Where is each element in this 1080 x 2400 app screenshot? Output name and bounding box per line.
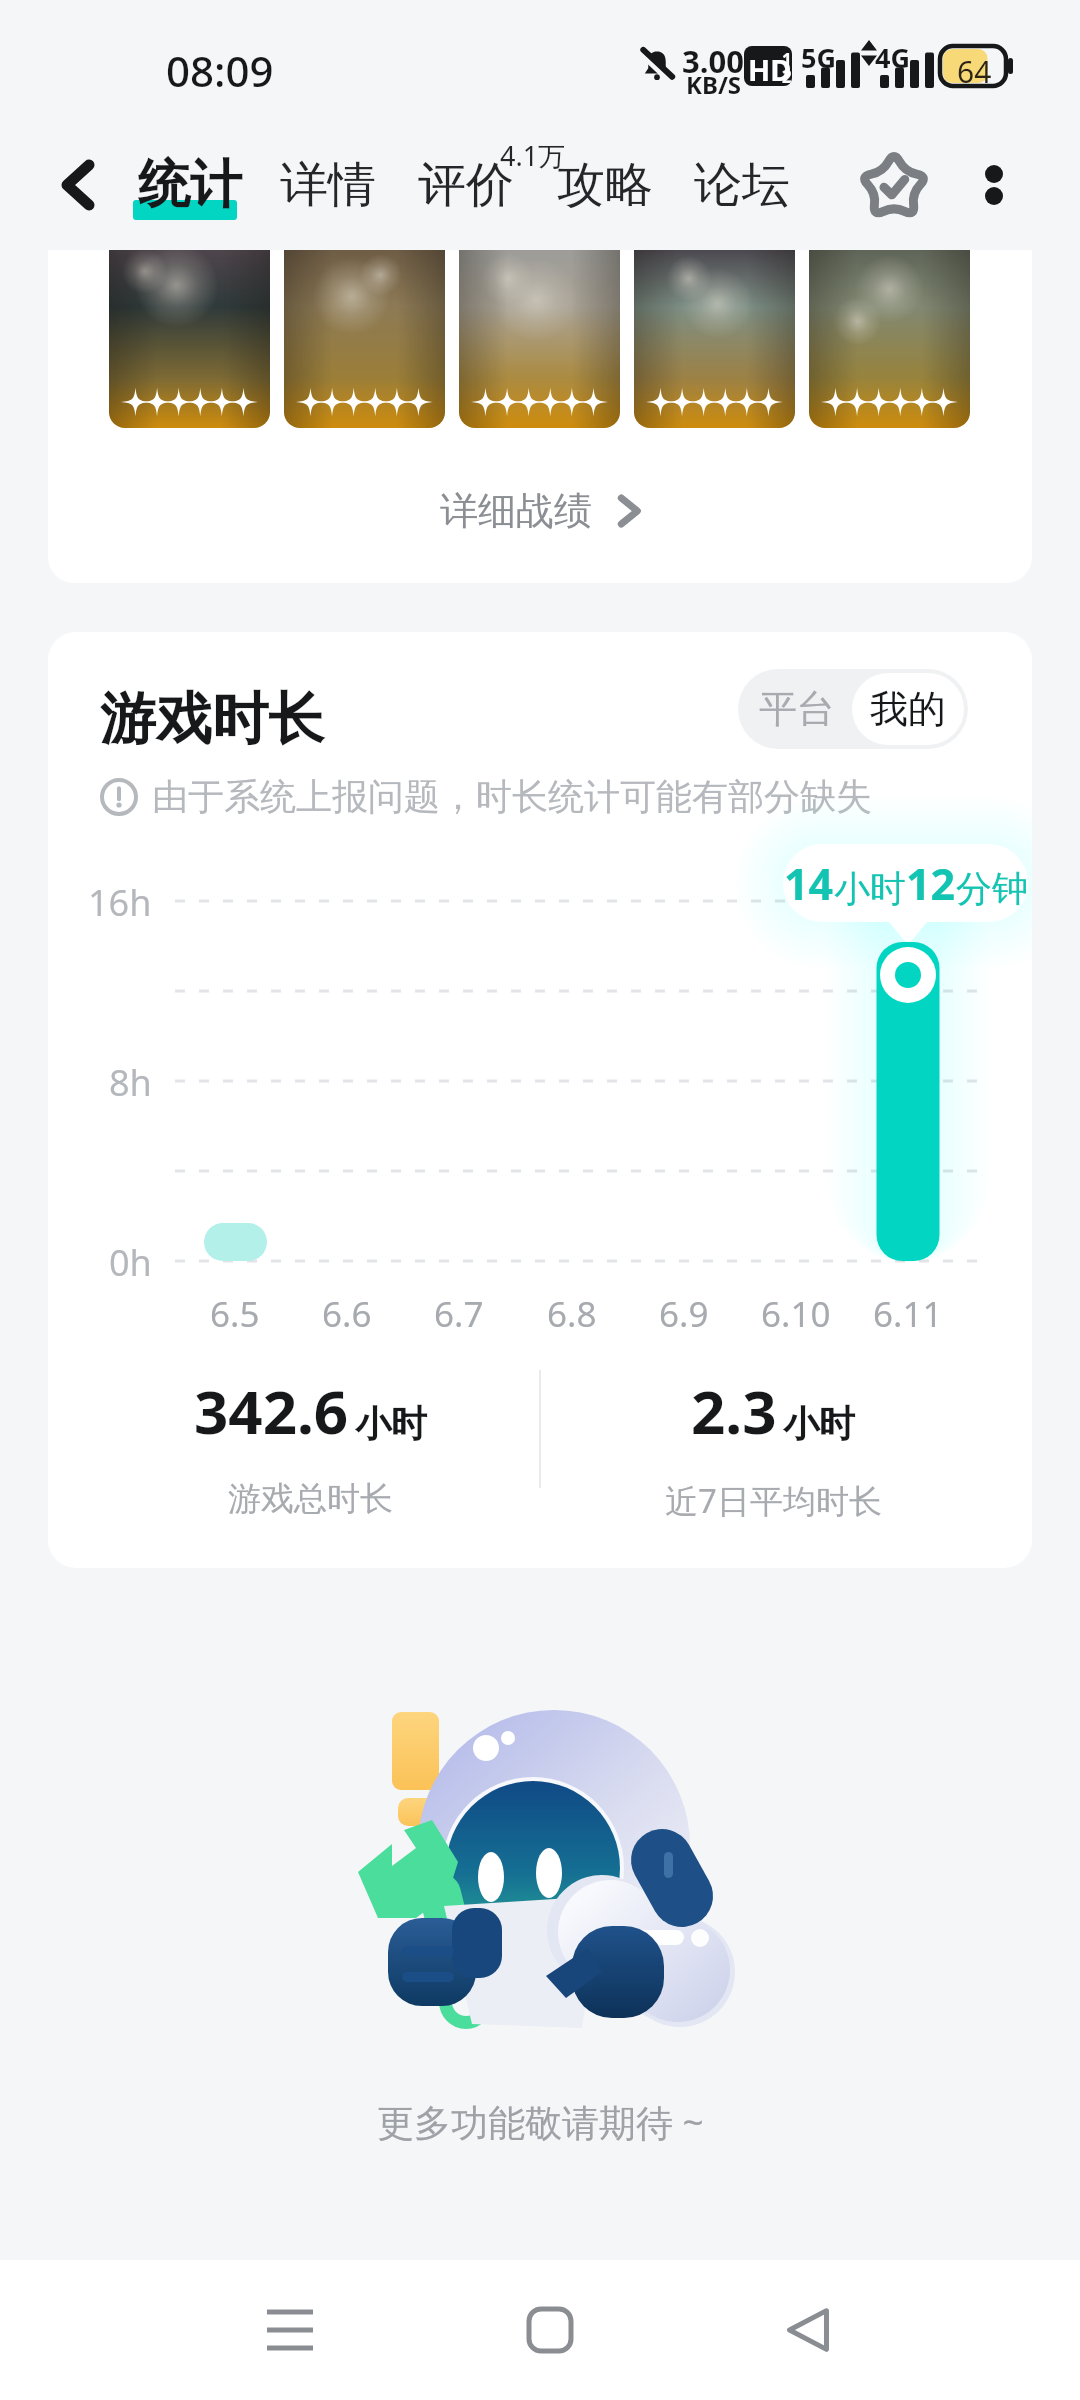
- button[interactable]: 统计: [120, 120, 260, 250]
- staticText: 平台: [759, 685, 835, 733]
- staticText: 4.1万: [500, 137, 566, 174]
- button[interactable]: 攻略: [538, 120, 672, 250]
- button[interactable]: Favorite: [840, 120, 948, 250]
- staticText: 0h: [109, 1238, 152, 1287]
- staticText: 6.7: [434, 1290, 484, 1338]
- staticText: 2.3: [691, 1370, 777, 1452]
- staticText: 论坛: [694, 155, 790, 215]
- staticText: 统计: [138, 152, 242, 218]
- button[interactable]: 详情: [261, 120, 395, 250]
- button[interactable]: 我的: [852, 673, 964, 745]
- staticText: 6.6: [322, 1290, 372, 1338]
- staticText: 6.9: [659, 1290, 709, 1338]
- staticText: 6.8: [547, 1290, 597, 1338]
- staticText: 5G: [801, 39, 836, 76]
- staticText: 小时: [834, 866, 906, 911]
- staticText: 小时: [355, 1401, 427, 1446]
- staticText: 12: [906, 854, 956, 913]
- button[interactable]: 评价: [399, 120, 533, 250]
- button[interactable]: Character 2: [284, 250, 445, 428]
- button[interactable]: More options: [948, 120, 1040, 250]
- button[interactable]: Character 4: [634, 250, 795, 428]
- button[interactable]: 论坛: [675, 120, 809, 250]
- staticText: HD: [748, 50, 792, 86]
- staticText: 2: [782, 65, 792, 86]
- staticText: 近7日平均时长: [665, 1478, 882, 1523]
- staticText: 6.5: [210, 1290, 260, 1338]
- staticText: 攻略: [557, 155, 653, 215]
- staticText: 小时: [783, 1401, 855, 1446]
- button[interactable]: Back: [748, 2260, 868, 2400]
- staticText: 16h: [88, 878, 152, 927]
- staticText: 我的: [870, 685, 946, 733]
- button[interactable]: 平台: [742, 673, 852, 745]
- button[interactable]: Recent apps: [230, 2260, 350, 2400]
- button[interactable]: Character 3: [459, 250, 620, 428]
- staticText: 由于系统上报问题，时长统计可能有部分缺失: [152, 774, 872, 819]
- staticText: 1: [782, 48, 792, 71]
- staticText: 342.6: [194, 1370, 349, 1452]
- staticText: 8h: [109, 1058, 152, 1107]
- staticText: 14: [784, 854, 834, 913]
- staticText: 分钟: [956, 866, 1028, 911]
- staticText: 评价: [418, 155, 514, 215]
- staticText: 更多功能敬请期待 ~: [377, 2096, 704, 2147]
- button[interactable]: Home: [490, 2260, 610, 2400]
- staticText: 详情: [280, 155, 376, 215]
- staticText: 详细战绩: [440, 487, 592, 535]
- staticText: KB/S: [686, 68, 742, 101]
- staticText: 64: [957, 51, 992, 92]
- button[interactable]: Character 1: [109, 250, 270, 428]
- staticText: 08:09: [166, 42, 274, 99]
- staticText: 4G: [875, 39, 910, 76]
- staticText: 游戏时长: [100, 684, 324, 755]
- staticText: 3.00: [682, 40, 744, 82]
- staticText: 游戏总时长: [228, 1478, 393, 1520]
- staticText: 6.11: [873, 1290, 943, 1338]
- button[interactable]: Character 5: [809, 250, 970, 428]
- staticText: 6.10: [761, 1290, 831, 1338]
- button[interactable]: Back: [18, 120, 138, 250]
- button[interactable]: 详细战绩: [420, 477, 660, 545]
